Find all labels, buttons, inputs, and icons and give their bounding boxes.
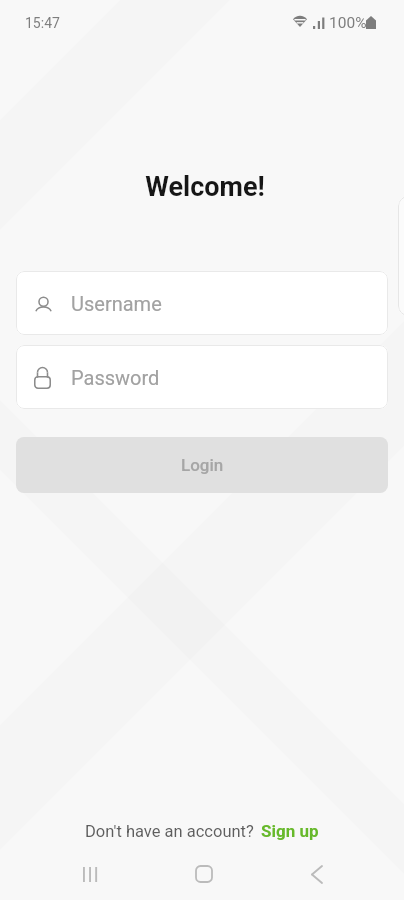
- staticText: Password: [71, 366, 160, 389]
- button[interactable]: Login: [16, 437, 388, 493]
- staticText: Sign up: [261, 821, 319, 841]
- staticText: Welcome!: [3, 171, 404, 203]
- button[interactable]: Back: [289, 846, 345, 900]
- button[interactable]: Recents: [62, 846, 118, 900]
- button[interactable]: Home: [176, 846, 232, 900]
- button[interactable]: Sign up: [261, 821, 319, 841]
- staticText: 15:47: [25, 15, 60, 31]
- button[interactable]: Password: [16, 345, 388, 409]
- button[interactable]: Username: [16, 271, 388, 335]
- staticText: Username: [71, 292, 162, 315]
- staticText: Don't have an account?: [85, 822, 254, 841]
- staticText: 100%: [329, 14, 367, 32]
- staticText: Login: [181, 455, 224, 475]
